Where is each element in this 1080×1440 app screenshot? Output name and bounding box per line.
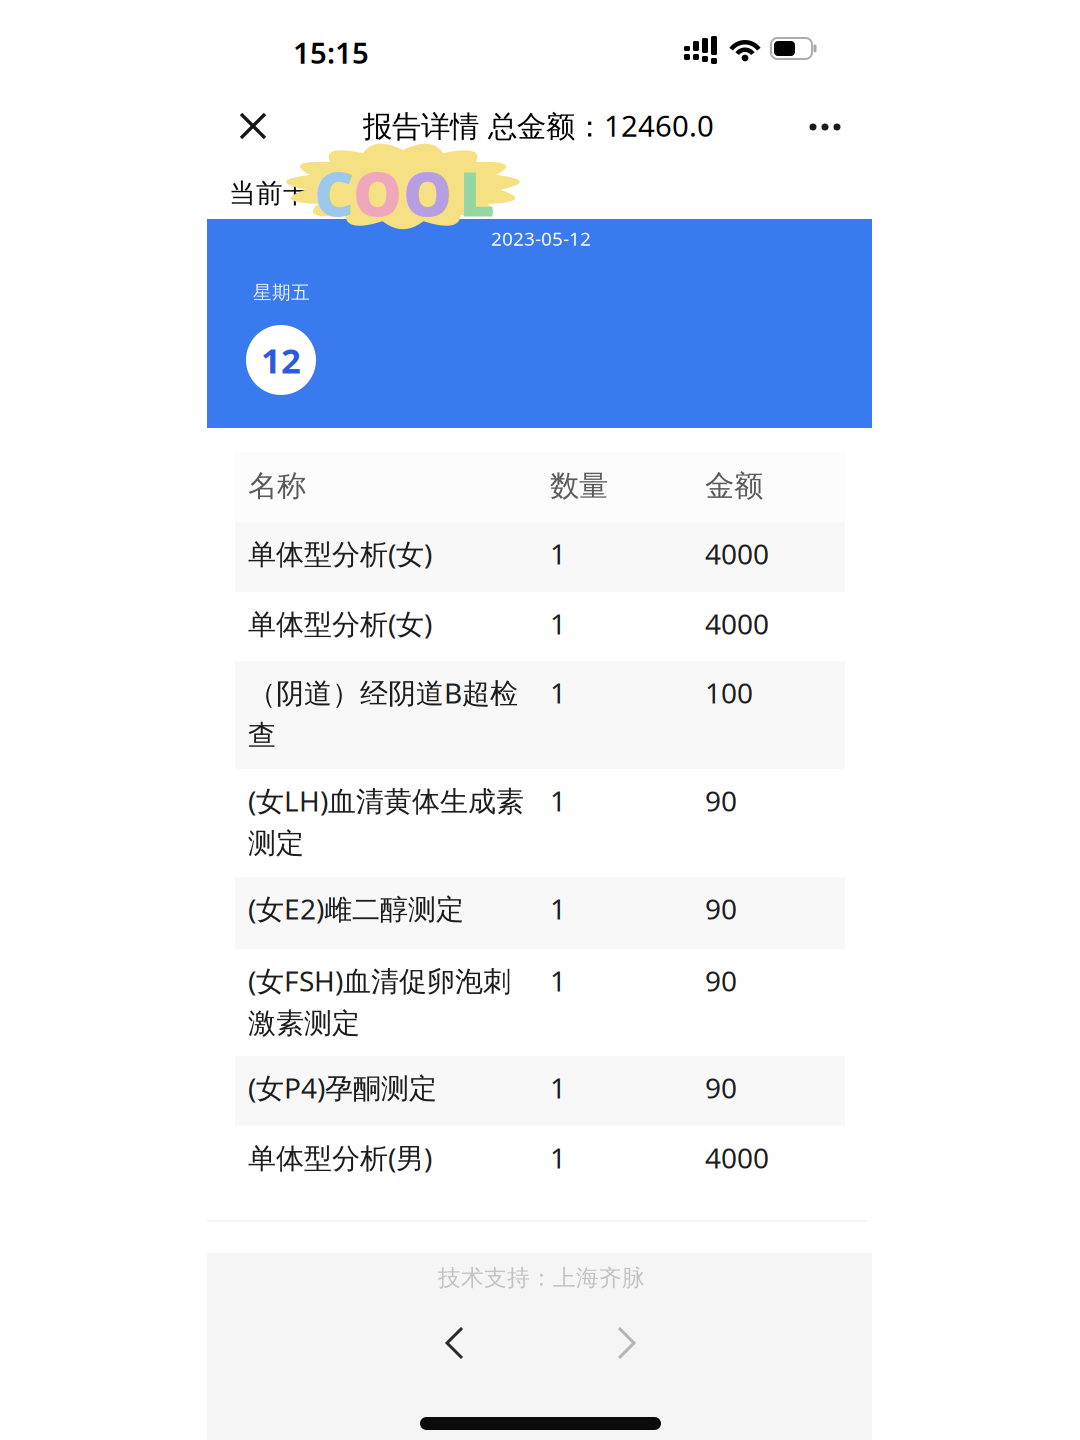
staticText: 1: [550, 674, 566, 711]
staticText: 技术支持：上海齐脉: [438, 1264, 645, 1292]
staticText: 单体型分析(男): [248, 1139, 432, 1176]
staticText: 单体型分析(女): [248, 605, 432, 642]
staticText: 90: [705, 1069, 737, 1106]
staticText: 15:15: [293, 33, 369, 72]
staticText: C: [314, 152, 354, 233]
staticText: 4000: [705, 1139, 769, 1176]
staticText: L: [459, 152, 495, 233]
staticText: (女LH)血清黄体生成素 测定: [248, 782, 524, 861]
staticText: O: [353, 152, 402, 233]
staticText: 1: [550, 535, 566, 572]
staticText: 90: [705, 962, 737, 999]
staticText: 1: [550, 1139, 566, 1176]
button[interactable]: Back: [432, 1311, 478, 1375]
staticText: 单体型分析(女): [248, 535, 432, 572]
staticText: 当前卡：: [229, 177, 337, 210]
staticText: 1: [550, 605, 566, 642]
staticText: 1: [550, 890, 566, 927]
staticText: 90: [705, 890, 737, 927]
staticText: 90: [705, 782, 737, 819]
staticText: 数量: [550, 468, 608, 504]
button[interactable]: Forward: [603, 1311, 649, 1375]
staticText: (女P4)孕酮测定: [248, 1069, 437, 1106]
staticText: 4000: [705, 605, 769, 642]
button[interactable]: More: [782, 84, 868, 170]
staticText: 名称: [248, 468, 306, 504]
staticText: 1: [550, 1069, 566, 1106]
staticText: O: [403, 152, 452, 233]
staticText: 1: [550, 962, 566, 999]
staticText: （阴道）经阴道B超检 查: [248, 674, 518, 753]
staticText: 12: [261, 337, 301, 383]
staticText: 星期五: [253, 281, 310, 304]
staticText: 4000: [705, 535, 769, 572]
staticText: 报告详情 总金额：12460.0: [363, 106, 714, 145]
staticText: 1: [550, 782, 566, 819]
staticText: 100: [705, 674, 753, 711]
button[interactable]: 2023-05-12: [207, 219, 872, 428]
staticText: (女FSH)血清促卵泡刺 激素测定: [248, 962, 511, 1041]
staticText: (女E2)雌二醇测定: [248, 890, 464, 927]
staticText: 2023-05-12: [491, 226, 591, 251]
staticText: 金额: [705, 468, 763, 504]
button[interactable]: Close: [210, 83, 296, 169]
